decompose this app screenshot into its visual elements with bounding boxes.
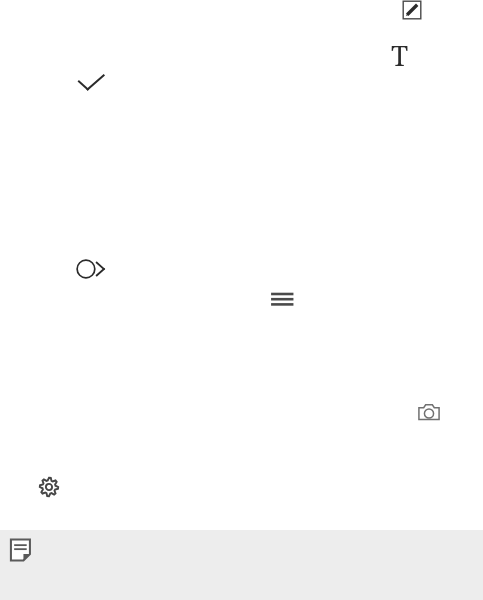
button[interactable]: Settings [39, 477, 59, 497]
button[interactable]: Text [390, 38, 416, 68]
button[interactable]: Camera [417, 402, 441, 424]
button[interactable]: Edit [402, 0, 422, 20]
button[interactable]: Done [76, 70, 106, 96]
button[interactable]: Next [74, 256, 114, 282]
button[interactable]: Menu [269, 289, 295, 307]
button[interactable]: Note [9, 538, 33, 562]
staticText: T [391, 36, 409, 66]
